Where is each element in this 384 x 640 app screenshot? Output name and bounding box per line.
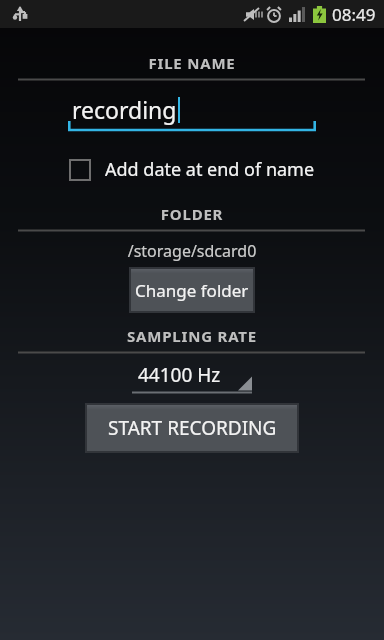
button[interactable]: 44100 Hz	[132, 362, 252, 394]
staticText: 44100 Hz	[138, 362, 221, 388]
staticText: FOLDER	[0, 204, 384, 224]
other: Battery charging	[313, 6, 326, 23]
other: Silent mode	[243, 6, 260, 23]
staticText: recording	[72, 94, 177, 125]
staticText: 08:49	[332, 3, 376, 26]
staticText: SAMPLING RATE	[0, 326, 384, 346]
staticText: START RECORDING	[108, 415, 277, 441]
button[interactable]: Add date at end of name	[63, 151, 321, 188]
staticText: FILE NAME	[0, 53, 384, 73]
button[interactable]: START RECORDING	[86, 404, 298, 452]
staticText: Change folder	[135, 279, 249, 302]
other: Alarm set	[266, 7, 282, 23]
staticText: /storage/sdcard0	[0, 240, 384, 262]
other: Signal strength	[289, 7, 307, 22]
staticText: Add date at end of name	[105, 157, 315, 182]
other: USB connected	[12, 6, 28, 22]
button[interactable]: recording	[0, 91, 384, 133]
button[interactable]: Change folder	[130, 268, 254, 312]
